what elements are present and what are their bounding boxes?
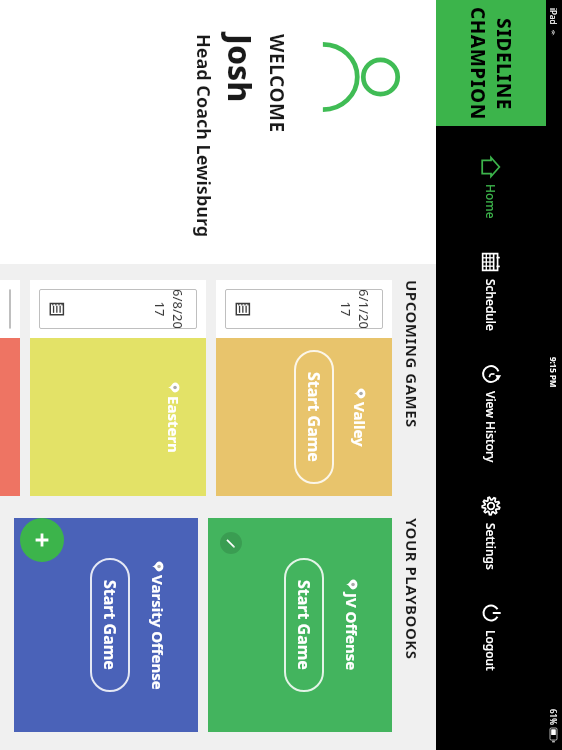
staticText: Start Game	[293, 580, 315, 670]
staticText: YOUR PLAYBOOKS	[402, 518, 422, 660]
button[interactable]: Add playbook	[20, 518, 64, 562]
staticText: WELCOME	[264, 34, 290, 133]
staticText: Start Game	[99, 580, 121, 670]
staticText: Settings	[483, 523, 499, 570]
button[interactable]: Edit playbook	[220, 532, 242, 554]
button[interactable]: Start Game	[294, 350, 334, 484]
button[interactable]: Logout	[474, 598, 508, 675]
button[interactable]: Start Game	[284, 558, 324, 692]
button[interactable]: View History	[474, 359, 508, 467]
button[interactable]: Edit playbook	[26, 532, 48, 554]
staticText: Logout	[483, 630, 499, 671]
button[interactable]: Home	[474, 152, 508, 223]
button[interactable]: Settings	[474, 491, 508, 574]
button[interactable]: Start Game	[90, 558, 130, 692]
button[interactable]: SIDELINE	[436, 0, 546, 126]
staticText: Eastern	[164, 396, 184, 453]
staticText: Start Game	[303, 372, 325, 462]
staticText: Schedule	[483, 279, 499, 331]
button[interactable]: JV Offense	[208, 518, 392, 732]
staticText: 6/1/2017	[337, 289, 373, 329]
staticText: UPCOMING GAMES	[402, 280, 422, 428]
button[interactable]: Schedule	[474, 247, 508, 335]
staticText: Josh	[218, 34, 262, 103]
staticText: 9:15 PM	[548, 357, 559, 388]
staticText: JV Offense	[342, 593, 362, 671]
button[interactable]: 6/8/2017	[30, 280, 206, 496]
button[interactable]: Varsity Offense	[14, 518, 198, 732]
staticText: Valley	[350, 402, 370, 447]
staticText: iPad	[548, 8, 559, 25]
staticText: SIDELINE	[491, 18, 517, 110]
staticText: Varsity Offense	[148, 575, 168, 690]
button[interactable]: 6/22/2017	[0, 280, 20, 496]
staticText: CHAMPION	[465, 7, 491, 120]
staticText: Head Coach Lewisburg	[191, 34, 216, 238]
staticText: View History	[483, 391, 499, 463]
button[interactable]: 6/1/2017	[216, 280, 392, 496]
staticText: 61%	[548, 709, 559, 725]
staticText: 6/8/2017	[151, 289, 187, 329]
staticText: Home	[483, 184, 499, 219]
